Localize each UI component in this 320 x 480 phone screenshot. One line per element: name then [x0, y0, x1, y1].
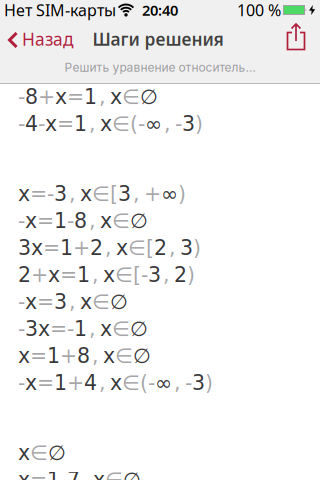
staticText: 2+x=1 , x∈[-3 , 2) — [18, 263, 195, 287]
staticText: Нет SIM-карты — [4, 0, 116, 21]
staticText: x=-3 , x∈[3 , +∞) — [18, 182, 186, 206]
staticText: -x=3 , x∈∅ — [18, 290, 128, 314]
staticText: Шаги решения — [92, 27, 223, 50]
staticText: Назад — [22, 27, 74, 50]
staticText: 100 % — [237, 0, 281, 21]
staticText: -x=1-8 , x∈∅ — [18, 209, 148, 233]
button[interactable]: Share — [286, 25, 320, 53]
staticText: 20:40 — [142, 0, 178, 20]
button[interactable]: Back — [0, 27, 74, 50]
staticText: -3x=-1 , x∈∅ — [18, 317, 148, 341]
staticText: x∈∅ — [18, 441, 66, 465]
staticText: -8+x=1 , x∈∅ — [18, 85, 158, 109]
staticText: x=1-7 , x∈∅ — [18, 468, 141, 480]
staticText: Решить уравнение относитель… — [64, 60, 255, 74]
staticText: -4-x=1 , x∈(-∞ , -3) — [18, 112, 203, 136]
staticText: 3x=1+2 , x∈[2 , 3) — [18, 236, 201, 260]
staticText: -x=1+4 , x∈(-∞ , -3) — [18, 371, 213, 395]
staticText: x=1+8 , x∈∅ — [18, 344, 151, 368]
